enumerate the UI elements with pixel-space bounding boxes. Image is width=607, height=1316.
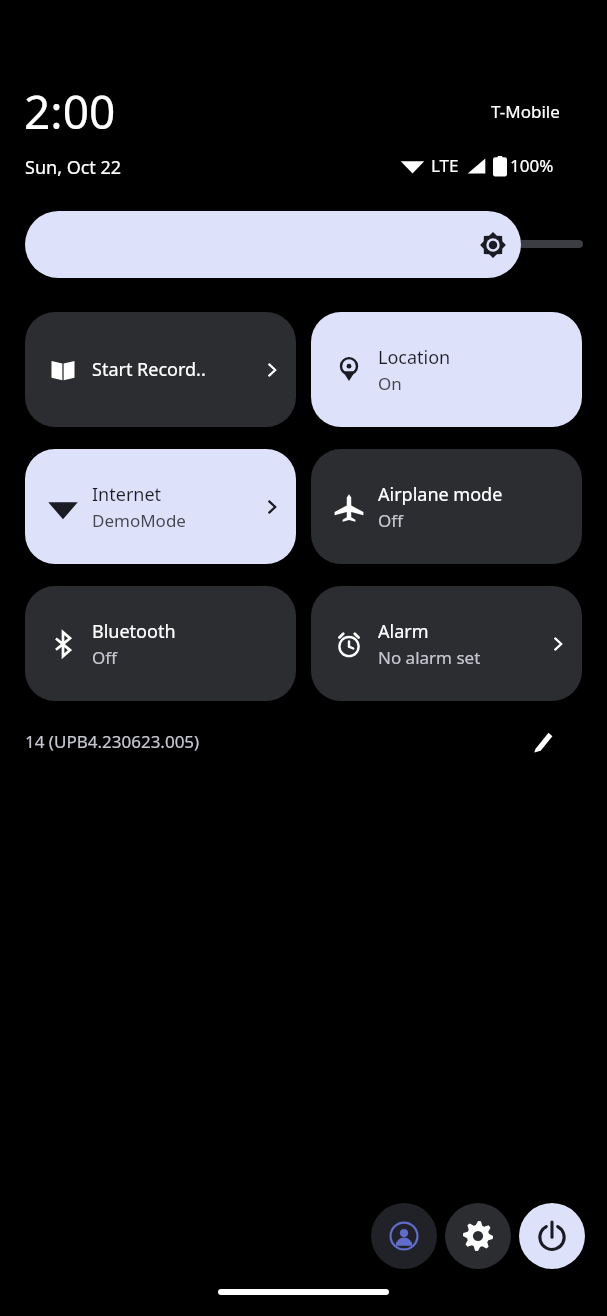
staticText: 14 (UPB4.230623.005) bbox=[25, 730, 200, 753]
staticText: 100% bbox=[510, 154, 554, 177]
other: Alarm bbox=[333, 628, 365, 660]
button[interactable]: Brightness bbox=[25, 211, 521, 278]
button[interactable]: Power bbox=[519, 1203, 585, 1269]
button[interactable]: Airplane mode bbox=[311, 449, 582, 564]
button[interactable]: User profile bbox=[371, 1203, 437, 1269]
button[interactable]: Edit tiles bbox=[519, 719, 565, 765]
staticText: Alarm bbox=[378, 619, 429, 644]
other: Location bbox=[333, 354, 365, 386]
staticText: T-Mobile bbox=[491, 100, 560, 123]
other: Internet bbox=[47, 491, 79, 523]
staticText: Location bbox=[378, 345, 451, 370]
other: Bluetooth bbox=[47, 628, 79, 660]
staticText: On bbox=[378, 372, 402, 395]
other: Airplane mode bbox=[333, 491, 365, 523]
staticText: Start Record.. bbox=[92, 357, 206, 382]
staticText: DemoMode bbox=[92, 509, 186, 532]
button[interactable]: Settings bbox=[445, 1203, 511, 1269]
button[interactable]: Location bbox=[311, 312, 582, 427]
other: Screen record bbox=[47, 354, 79, 386]
staticText: Internet bbox=[92, 482, 162, 507]
staticText: Airplane mode bbox=[378, 482, 503, 507]
staticText: No alarm set bbox=[378, 646, 481, 669]
button[interactable]: Bluetooth bbox=[25, 586, 296, 701]
staticText: Sun, Oct 22 bbox=[25, 155, 122, 180]
button[interactable]: Screen record bbox=[25, 312, 296, 427]
button[interactable]: Internet bbox=[25, 449, 296, 564]
staticText: Off bbox=[92, 646, 117, 669]
staticText: LTE bbox=[431, 154, 459, 177]
button[interactable]: Alarm bbox=[311, 586, 582, 701]
staticText: Bluetooth bbox=[92, 619, 176, 644]
staticText: 2:00 bbox=[24, 80, 116, 143]
staticText: Off bbox=[378, 509, 403, 532]
